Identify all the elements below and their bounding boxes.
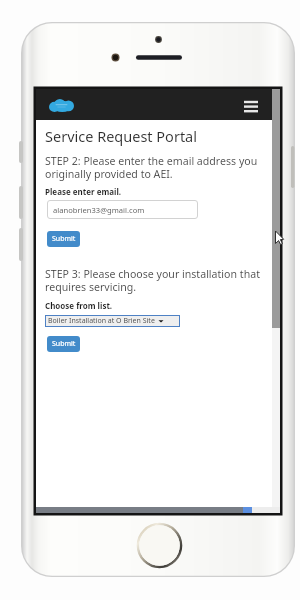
button[interactable]: alanobrien33@gmail.com	[47, 200, 198, 219]
staticText: Submit	[52, 234, 76, 244]
button[interactable]: Boiler Installation at O Brien Site	[45, 315, 180, 327]
staticText: Please enter email.	[45, 186, 122, 197]
button[interactable]: Salesforce home	[49, 99, 74, 112]
staticText: STEP 3: Please choose your installation …	[45, 267, 269, 294]
button[interactable]: Menu	[242, 97, 260, 113]
button[interactable]: Submit	[47, 231, 80, 247]
staticText: Choose from list.	[45, 300, 113, 311]
staticText: STEP 2: Please enter the email address y…	[45, 154, 267, 181]
staticText: Service Request Portal	[45, 126, 197, 146]
staticText: Submit	[52, 339, 76, 349]
button[interactable]: Submit	[47, 336, 80, 352]
staticText: Boiler Installation at O Brien Site	[48, 316, 155, 326]
staticText: alanobrien33@gmail.com	[53, 205, 145, 215]
